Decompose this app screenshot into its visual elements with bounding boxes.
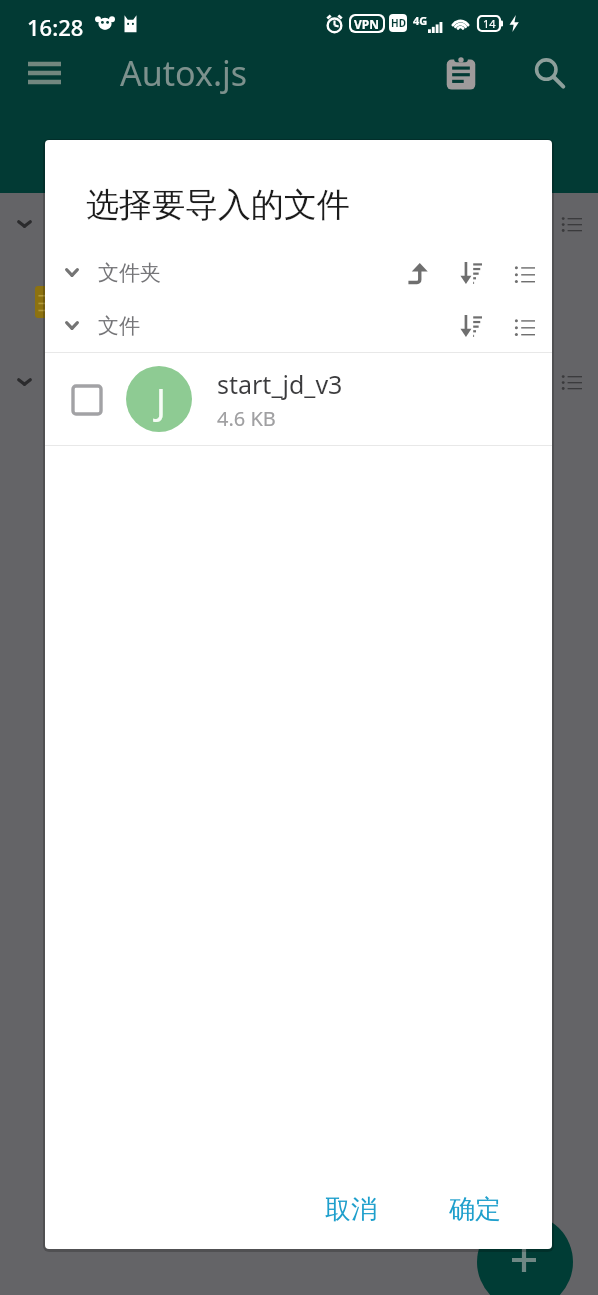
staticText: 4.6 KB [217, 405, 276, 432]
staticText: 文件 [98, 313, 140, 339]
button[interactable]: 取消 [305, 1181, 397, 1238]
staticText: 确定 [449, 1193, 501, 1226]
staticText: 选择要导入的文件 [86, 184, 350, 226]
button[interactable]: View mode [502, 250, 548, 296]
button[interactable]: 文件 [45, 299, 552, 352]
button[interactable]: 确定 [429, 1181, 521, 1238]
button[interactable]: Select start_jd_v3 [45, 353, 552, 445]
button[interactable]: Add [477, 1214, 573, 1295]
staticText: VPN [354, 16, 380, 31]
staticText: 16:28 [27, 12, 84, 42]
staticText: Autox.js [120, 50, 248, 96]
button[interactable]: Select start_jd_v3 [58, 371, 115, 428]
button[interactable]: Sort [448, 303, 494, 349]
button[interactable]: Menu [6, 46, 83, 100]
button[interactable]: Sort [448, 250, 494, 296]
staticText: 4G [413, 13, 428, 27]
button[interactable]: View mode [502, 303, 548, 349]
button[interactable]: Logs [425, 46, 497, 100]
staticText: HD [391, 16, 406, 30]
button[interactable]: Search [513, 46, 585, 100]
staticText: start_jd_v3 [217, 367, 343, 401]
staticText: J [156, 377, 166, 426]
staticText: 14 [483, 16, 496, 31]
button[interactable]: 文件夹 [45, 246, 552, 299]
staticText: 文件夹 [98, 260, 161, 286]
staticText: 取消 [325, 1193, 377, 1226]
button[interactable]: Up one level [395, 250, 441, 296]
